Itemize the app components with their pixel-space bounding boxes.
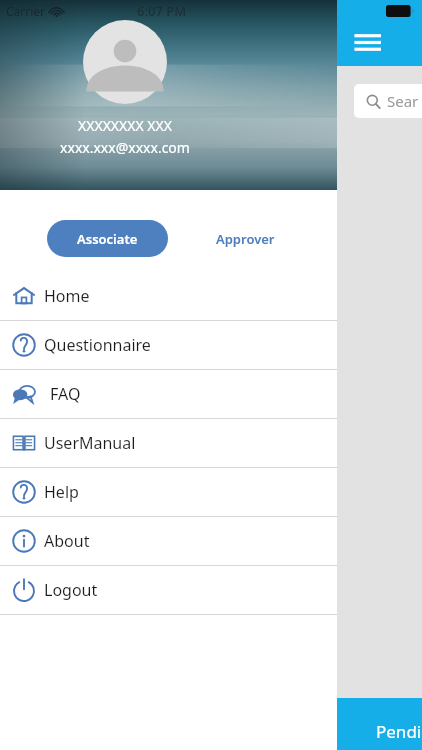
button[interactable]: Pendi — [0, 698, 422, 750]
button[interactable]: Help — [0, 468, 337, 517]
staticText: Associate — [77, 230, 138, 248]
button[interactable]: Logout — [0, 566, 337, 615]
button[interactable]: Sear — [354, 84, 422, 118]
staticText: FAQ — [50, 383, 81, 405]
staticText: Carrier — [6, 3, 46, 19]
staticText: Questionnaire — [44, 334, 151, 356]
staticText: About — [44, 530, 90, 552]
button[interactable]: Approver — [206, 220, 285, 257]
staticText: Sear — [387, 91, 419, 111]
button[interactable]: Open navigation menu — [356, 30, 386, 56]
staticText: Help — [44, 481, 79, 503]
button[interactable]: UserManual — [0, 419, 337, 468]
staticText: Approver — [216, 230, 275, 248]
button[interactable]: About — [0, 517, 337, 566]
staticText: Pendi — [376, 720, 422, 743]
button[interactable]: Associate — [47, 220, 168, 257]
staticText: Logout — [44, 579, 98, 601]
staticText: xxxx.xxx@xxxx.com — [60, 138, 190, 157]
button[interactable]: Questionnaire — [0, 321, 337, 370]
staticText: 6:07 PM — [137, 2, 187, 20]
staticText: UserManual — [44, 432, 136, 454]
staticText: XXXXXXXX XXX — [78, 116, 172, 135]
button[interactable]: FAQ — [0, 370, 337, 419]
button[interactable]: Home — [0, 272, 337, 321]
staticText: Home — [44, 285, 90, 307]
